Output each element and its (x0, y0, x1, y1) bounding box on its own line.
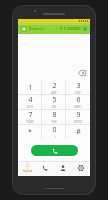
staticText: 4 (28, 95, 33, 105)
button[interactable]: Recents (36, 161, 54, 175)
button[interactable]: 5 (42, 95, 66, 109)
staticText: JKL (52, 105, 57, 109)
staticText: 9 (76, 110, 81, 120)
button[interactable]: 4 (18, 95, 42, 109)
button[interactable]: Call (31, 145, 78, 156)
staticText: WXYZ (74, 120, 82, 124)
staticText: PQRS (26, 120, 34, 124)
staticText: $ 1.120000 (60, 26, 81, 31)
staticText: 3 (76, 81, 81, 91)
staticText: Balance (29, 26, 45, 31)
button[interactable]: # (66, 125, 90, 139)
staticText: 5 (52, 95, 57, 105)
staticText: + (54, 135, 56, 139)
staticText: 2 (52, 81, 57, 91)
staticText: 7 (28, 110, 33, 120)
button[interactable]: Keypad (18, 161, 36, 175)
staticText: 1 (28, 83, 33, 93)
button[interactable]: 6 (66, 95, 90, 109)
staticText: DEF (75, 91, 81, 94)
button[interactable]: 1 (18, 81, 42, 94)
staticText: 0 (52, 125, 57, 135)
staticText: MNO (74, 105, 82, 109)
button[interactable]: Account (21, 26, 27, 32)
staticText: * (28, 127, 32, 137)
staticText: GHI (27, 105, 33, 109)
staticText: TUV (51, 120, 57, 124)
staticText: 8 (52, 110, 57, 120)
button[interactable]: 7 (18, 110, 42, 124)
button[interactable]: 0 (42, 125, 66, 139)
button[interactable]: Contacts (54, 161, 72, 175)
staticText: ABC (51, 91, 57, 94)
button[interactable]: 8 (42, 110, 66, 124)
button[interactable]: Backspace (77, 68, 86, 77)
staticText: 6 (76, 95, 81, 105)
button[interactable]: 3 (66, 81, 90, 94)
staticText: # (76, 127, 81, 137)
button[interactable]: 2 (42, 81, 66, 94)
staticText: Keypad (23, 169, 32, 173)
button[interactable]: * (18, 125, 42, 139)
button[interactable]: Settings (72, 161, 90, 175)
button[interactable]: Status (83, 27, 87, 31)
button[interactable]: 9 (66, 110, 90, 124)
